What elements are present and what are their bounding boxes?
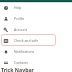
staticText: Contacts [14,60,28,65]
staticText: Profile [14,16,25,21]
staticText: Help [14,5,22,10]
button[interactable]: Help [0,2,72,13]
staticText: Trick Navbar [1,66,34,72]
button[interactable]: Account [0,24,72,35]
button[interactable]: Notifications [0,46,72,57]
button[interactable]: Profile [0,13,72,24]
button[interactable]: Contacts [0,57,72,68]
staticText: Notifications [14,49,35,54]
button[interactable]: Check and safe [0,35,72,46]
staticText: Check and safe [14,38,39,43]
staticText: Account [14,27,27,32]
